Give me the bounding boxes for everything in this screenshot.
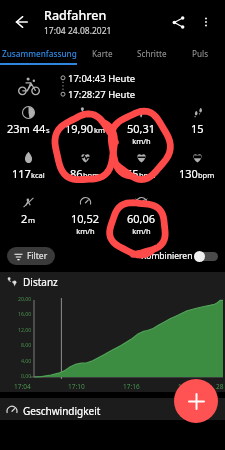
staticText: 8,00 [21, 341, 32, 348]
staticText: 2 [21, 211, 28, 226]
staticText: bpm [198, 170, 215, 180]
button[interactable]: More options [193, 9, 219, 35]
button[interactable]: Kombinieren [141, 250, 218, 262]
button[interactable]: Add [174, 379, 218, 423]
button[interactable]: Distanz [6, 272, 225, 292]
button[interactable]: 19,90 [57, 103, 113, 148]
staticText: 10,52 [71, 211, 100, 226]
staticText: Geschwindigkeit [23, 404, 101, 418]
staticText: m [28, 215, 36, 225]
staticText: km [94, 125, 106, 135]
staticText: km/h [132, 226, 151, 236]
button[interactable]: 117 [0, 148, 57, 193]
staticText: 17:28:27 Heute [68, 88, 136, 101]
button[interactable]: Schritte [127, 44, 176, 63]
staticText: s [46, 125, 50, 135]
staticText: Puls [192, 48, 209, 59]
button[interactable]: 10,52 [57, 193, 113, 243]
staticText: 17:16 [123, 382, 140, 391]
button[interactable]: 23m 44 [0, 103, 57, 148]
staticText: bpm [139, 170, 156, 180]
staticText: 17:04:43 Heute [68, 72, 136, 85]
staticText: 12,00 [18, 326, 32, 333]
staticText: Schritte [137, 48, 167, 59]
staticText: 50,31 [127, 121, 156, 136]
staticText: 55 [126, 166, 139, 181]
staticText: 19,90 [65, 121, 94, 136]
button[interactable]: 15 [169, 103, 225, 148]
staticText: 28 [216, 382, 224, 391]
staticText: Filter [27, 250, 48, 262]
button[interactable]: Karte [78, 44, 127, 63]
button[interactable]: Geschwindigkeit [6, 402, 225, 420]
staticText: 20,00 [18, 295, 32, 302]
button[interactable]: Zusammenfassung [0, 44, 78, 63]
staticText: Zusammenfassung [2, 48, 77, 59]
button[interactable]: Puls [176, 44, 225, 63]
staticText: Distanz [23, 275, 58, 289]
staticText: km/h [132, 136, 151, 146]
button[interactable]: 55 [113, 148, 169, 193]
button[interactable]: 86 [57, 148, 113, 193]
staticText: Karte [92, 48, 113, 59]
button[interactable]: Filter [7, 247, 55, 265]
button[interactable]: 2 [0, 193, 57, 243]
staticText: bpm [83, 170, 100, 180]
staticText: kcal [31, 170, 45, 180]
staticText: 15 [191, 121, 204, 136]
staticText: 17:10 [68, 382, 85, 391]
button[interactable]: 130 [169, 148, 225, 193]
staticText: 117 [12, 166, 31, 181]
button[interactable]: Share [163, 7, 193, 37]
staticText: 23m 44 [7, 121, 46, 136]
staticText: 130 [179, 166, 198, 181]
staticText: 60,06 [127, 211, 156, 226]
staticText: 0,00 [21, 372, 32, 379]
button[interactable]: Back [6, 7, 36, 37]
staticText: 4,00 [21, 357, 32, 364]
staticText: 17:22 [178, 382, 195, 391]
staticText: km/h [76, 226, 95, 236]
button[interactable]: 50,31 [113, 103, 169, 148]
button[interactable]: 60,06 [113, 193, 169, 243]
staticText: 17:04 24.08.2021 [44, 25, 112, 37]
staticText: Radfahren [44, 7, 107, 24]
staticText: 17:04 [14, 382, 31, 391]
staticText: Kombinieren [141, 250, 193, 262]
staticText: 86 [70, 166, 83, 181]
staticText: 16,00 [18, 310, 32, 317]
